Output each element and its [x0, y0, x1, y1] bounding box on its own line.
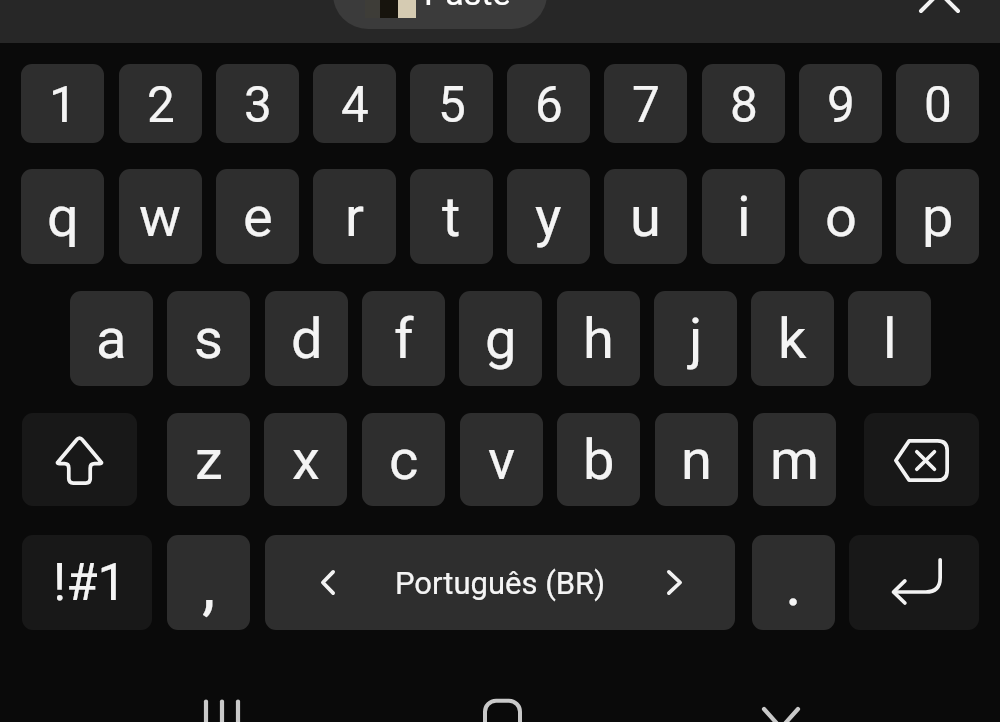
button[interactable]: b [557, 413, 640, 506]
button[interactable]: 7 [604, 64, 687, 143]
button[interactable]: u [604, 169, 687, 264]
staticText: 8 [730, 76, 758, 134]
button[interactable]: s [167, 291, 250, 386]
button[interactable]: v [460, 413, 543, 506]
button[interactable]: a [70, 291, 153, 386]
button[interactable]: 6 [507, 64, 590, 143]
button[interactable]: Back [749, 690, 813, 722]
staticText: y [535, 184, 562, 250]
staticText: b [583, 427, 615, 493]
button[interactable]: 3 [216, 64, 299, 143]
button[interactable]: Recents [190, 690, 254, 722]
button[interactable]: l [848, 291, 931, 386]
button[interactable]: 1 [21, 64, 104, 143]
button[interactable]: p [896, 169, 979, 264]
staticText: t [442, 184, 461, 250]
staticText: g [485, 306, 517, 372]
button[interactable]: n [655, 413, 738, 506]
button[interactable]: g [459, 291, 542, 386]
button[interactable]: z [167, 413, 250, 506]
button[interactable]: 8 [702, 64, 785, 143]
button[interactable]: Backspace [864, 413, 979, 506]
staticText: x [292, 427, 320, 493]
staticText: 7 [632, 76, 660, 134]
button[interactable]: Close [904, 0, 974, 27]
staticText: u [630, 184, 661, 250]
button[interactable]: 0 [896, 64, 979, 143]
staticText: r [345, 184, 364, 250]
button[interactable]: m [753, 413, 836, 506]
staticText: Português (BR) [395, 565, 605, 601]
staticText: a [96, 306, 127, 372]
staticText: 6 [535, 76, 563, 134]
button[interactable]: d [265, 291, 348, 386]
staticText: z [195, 427, 223, 493]
button[interactable]: k [751, 291, 834, 386]
staticText: 1 [49, 76, 77, 134]
button[interactable]: j [654, 291, 737, 386]
staticText: n [681, 427, 712, 493]
button[interactable]: q [21, 169, 104, 264]
button[interactable]: 4 [313, 64, 396, 143]
staticText: !#1 [53, 553, 127, 613]
button[interactable]: . [752, 535, 835, 630]
button[interactable]: 9 [799, 64, 882, 143]
staticText: f [394, 306, 414, 372]
button[interactable]: r [313, 169, 396, 264]
staticText: 3 [244, 76, 272, 134]
staticText: , [202, 544, 216, 624]
staticText: 9 [827, 76, 855, 134]
staticText: i [737, 184, 751, 250]
button[interactable]: Home [470, 690, 534, 722]
button[interactable]: Paste [333, 0, 547, 29]
staticText: Paste [424, 0, 511, 13]
button[interactable]: o [799, 169, 882, 264]
staticText: j [689, 306, 703, 372]
button[interactable]: Shift [22, 413, 137, 506]
staticText: c [389, 427, 419, 493]
staticText: q [47, 184, 79, 250]
button[interactable]: y [507, 169, 590, 264]
staticText: k [778, 306, 807, 372]
button[interactable]: 5 [410, 64, 493, 143]
button[interactable]: Português (BR) [265, 535, 735, 630]
staticText: l [883, 306, 897, 372]
button[interactable]: w [119, 169, 202, 264]
staticText: 5 [438, 76, 466, 134]
button[interactable]: i [702, 169, 785, 264]
button[interactable]: , [167, 535, 250, 630]
button[interactable]: !#1 [22, 535, 152, 630]
button[interactable]: Enter [849, 535, 979, 630]
staticText: s [194, 306, 223, 372]
staticText: . [785, 546, 802, 621]
button[interactable]: 2 [119, 64, 202, 143]
staticText: p [922, 184, 954, 250]
staticText: w [139, 184, 182, 250]
staticText: o [825, 184, 857, 250]
staticText: m [770, 427, 820, 493]
button[interactable]: e [216, 169, 299, 264]
staticText: h [583, 306, 614, 372]
staticText: d [291, 306, 323, 372]
staticText: e [243, 184, 273, 250]
staticText: 4 [341, 76, 369, 134]
button[interactable]: f [362, 291, 445, 386]
button[interactable]: x [264, 413, 347, 506]
button[interactable]: t [410, 169, 493, 264]
staticText: v [488, 427, 516, 493]
staticText: 2 [147, 76, 175, 134]
button[interactable]: h [557, 291, 640, 386]
button[interactable]: c [362, 413, 445, 506]
staticText: 0 [924, 76, 952, 134]
